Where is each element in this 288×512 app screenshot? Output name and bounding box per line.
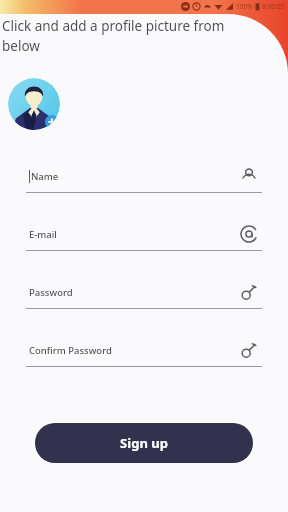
staticText: E-mail: [29, 228, 57, 241]
button[interactable]: Sign up: [35, 423, 253, 463]
staticText: Sign up: [120, 434, 168, 452]
staticText: 100%: [236, 2, 253, 11]
button[interactable]: Name: [0, 162, 288, 204]
staticText: Password: [29, 286, 73, 299]
staticText: below: [2, 37, 40, 55]
button[interactable]: E-mail: [0, 220, 288, 262]
staticText: Name: [31, 170, 59, 183]
staticText: Confirm Password: [29, 344, 112, 357]
staticText: Click and add a profile picture from: [2, 17, 225, 35]
staticText: 8:00:05: [262, 2, 285, 11]
button[interactable]: Confirm Password: [0, 336, 288, 378]
button[interactable]: Add profile picture: [8, 78, 60, 130]
button[interactable]: Password: [0, 278, 288, 320]
